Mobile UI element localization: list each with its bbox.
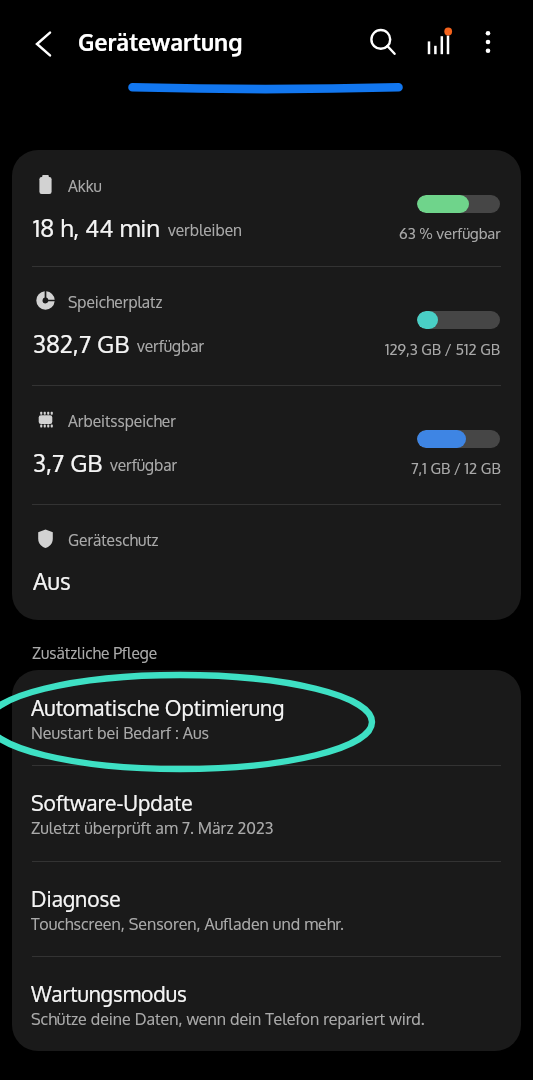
staticText: Geräteschutz xyxy=(68,530,159,550)
staticText: Wartungsmodus xyxy=(31,980,187,1007)
staticText: Software-Update xyxy=(31,789,193,816)
staticText: Zuletzt überprüft am 7. März 2023 xyxy=(31,818,274,838)
staticText: Schütze deine Daten, wenn dein Telefon r… xyxy=(31,1009,425,1029)
staticText: verbleiben xyxy=(168,220,243,240)
button[interactable]: Arbeitsspeicher xyxy=(12,385,521,504)
staticText: Gerätewartung xyxy=(78,27,243,56)
button[interactable]: More options xyxy=(467,18,509,60)
staticText: 7,1 GB / 12 GB xyxy=(411,459,501,478)
button[interactable]: Search xyxy=(360,18,402,60)
button[interactable]: Automatische Optimierung xyxy=(12,670,521,765)
staticText: Speicherplatz xyxy=(68,292,163,312)
staticText: 18 h, 44 min xyxy=(33,212,161,242)
button[interactable]: Geräteschutz xyxy=(12,504,521,620)
staticText: Aus xyxy=(33,566,71,595)
button[interactable]: Diagnose xyxy=(12,861,521,956)
staticText: Akku xyxy=(68,176,102,196)
button[interactable]: Software-Update xyxy=(12,765,521,861)
button[interactable]: Akku xyxy=(12,150,521,266)
staticText: 382,7 GB xyxy=(33,328,130,358)
staticText: Automatische Optimierung xyxy=(31,694,285,721)
staticText: 63 % verfügbar xyxy=(399,224,501,243)
staticText: Arbeitsspeicher xyxy=(68,411,176,431)
button[interactable]: Navigate up xyxy=(22,21,67,66)
staticText: Touchscreen, Sensoren, Aufladen und mehr… xyxy=(31,914,344,934)
staticText: Neustart bei Bedarf : Aus xyxy=(31,723,209,743)
button[interactable]: Speicherplatz xyxy=(12,266,521,385)
staticText: 3,7 GB xyxy=(33,447,103,477)
button[interactable]: Wartungsmodus xyxy=(12,956,521,1051)
staticText: verfügbar xyxy=(110,455,178,475)
staticText: Diagnose xyxy=(31,885,121,912)
staticText: Zusätzliche Pflege xyxy=(32,643,158,663)
staticText: 129,3 GB / 512 GB xyxy=(385,340,501,359)
button[interactable]: Usage statistics xyxy=(421,18,463,60)
staticText: verfügbar xyxy=(137,336,205,356)
